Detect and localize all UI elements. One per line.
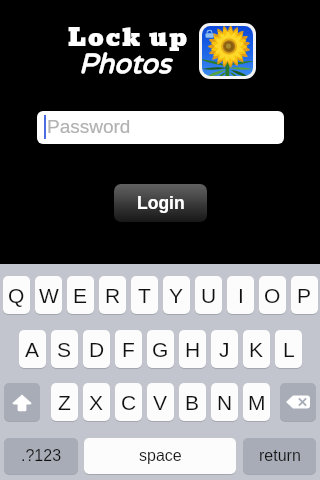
button[interactable]: X — [83, 383, 110, 421]
button[interactable]: L — [275, 330, 302, 368]
button[interactable]: Lock up Photos icon — [199, 23, 256, 79]
button[interactable]: Shift — [4, 383, 40, 421]
button[interactable]: V — [147, 383, 174, 421]
staticText: Lock up — [68, 18, 190, 57]
staticText: V — [153, 391, 168, 414]
button[interactable]: W — [35, 276, 62, 314]
staticText: I — [238, 284, 244, 307]
button[interactable]: Z — [51, 383, 78, 421]
staticText: Y — [169, 284, 184, 307]
staticText: J — [219, 338, 230, 361]
staticText: U — [201, 284, 217, 307]
button[interactable]: H — [179, 330, 206, 368]
staticText: T — [138, 284, 151, 307]
button[interactable]: K — [243, 330, 270, 368]
button[interactable]: Password — [37, 111, 284, 144]
staticText: N — [217, 391, 233, 414]
button[interactable]: S — [51, 330, 78, 368]
button[interactable]: F — [115, 330, 142, 368]
staticText: O — [264, 284, 281, 307]
staticText: .?123 — [21, 447, 62, 465]
staticText: F — [122, 338, 135, 361]
button[interactable]: I — [227, 276, 254, 314]
button[interactable]: U — [195, 276, 222, 314]
button[interactable]: T — [131, 276, 158, 314]
button[interactable]: N — [211, 383, 238, 421]
button[interactable]: B — [179, 383, 206, 421]
button[interactable]: J — [211, 330, 238, 368]
staticText: D — [89, 338, 105, 361]
button[interactable]: P — [291, 276, 318, 314]
button[interactable]: A — [19, 330, 46, 368]
staticText: A — [25, 338, 40, 361]
staticText: E — [73, 284, 88, 307]
staticText: Password — [47, 116, 131, 137]
staticText: C — [121, 391, 137, 414]
button[interactable]: R — [99, 276, 126, 314]
button[interactable]: Y — [163, 276, 190, 314]
staticText: M — [248, 391, 266, 414]
staticText: K — [249, 338, 264, 361]
staticText: Login — [137, 193, 185, 213]
staticText: Z — [58, 391, 71, 414]
staticText: S — [57, 338, 72, 361]
staticText: Q — [8, 284, 25, 307]
button[interactable]: Backspace — [280, 383, 316, 421]
button[interactable]: C — [115, 383, 142, 421]
staticText: P — [297, 284, 312, 307]
staticText: X — [89, 391, 104, 414]
staticText: L — [283, 338, 295, 361]
staticText: W — [39, 284, 59, 307]
button[interactable]: O — [259, 276, 286, 314]
button[interactable]: D — [83, 330, 110, 368]
button[interactable]: Login — [114, 184, 207, 222]
staticText: H — [185, 338, 201, 361]
staticText: G — [152, 338, 169, 361]
button[interactable]: return — [243, 438, 316, 474]
button[interactable]: G — [147, 330, 174, 368]
staticText: R — [105, 284, 121, 307]
button[interactable]: Q — [3, 276, 30, 314]
button[interactable]: M — [243, 383, 270, 421]
button[interactable]: E — [67, 276, 94, 314]
button[interactable]: space — [84, 438, 236, 474]
staticText: return — [259, 447, 301, 465]
staticText: B — [185, 391, 200, 414]
staticText: space — [139, 447, 182, 465]
button[interactable]: .?123 — [4, 438, 78, 474]
staticText: Photos — [79, 48, 171, 81]
